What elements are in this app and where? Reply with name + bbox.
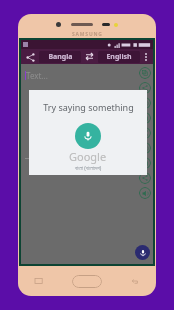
staticText: Bangla: [48, 52, 73, 62]
button[interactable]: Bangla: [39, 51, 81, 63]
button[interactable]: Share: [139, 127, 151, 139]
button[interactable]: Share: [24, 51, 36, 63]
button[interactable]: Copy: [139, 67, 151, 79]
button[interactable]: English: [98, 51, 140, 63]
button[interactable]: Back: [128, 274, 142, 288]
button[interactable]: Share: [139, 172, 151, 184]
button[interactable]: Listening, tap to stop: [75, 123, 101, 149]
staticText: Google: [69, 149, 107, 164]
button[interactable]: Speak: [139, 142, 151, 154]
button[interactable]: Recents: [32, 274, 46, 288]
staticText: বাংলা (বাংলাদেশ): [75, 165, 102, 172]
button[interactable]: Voice input: [135, 245, 150, 260]
button[interactable]: Swap languages: [83, 50, 96, 63]
button[interactable]: Copy: [139, 157, 151, 169]
button[interactable]: More options: [142, 50, 150, 63]
button[interactable]: Speak: [139, 97, 151, 109]
button[interactable]: Share: [139, 82, 151, 94]
staticText: Try saying something: [43, 101, 134, 113]
staticText: Text...: [26, 70, 48, 81]
staticText: SAMSUNG: [72, 31, 103, 38]
staticText: English: [106, 52, 132, 62]
button[interactable]: Copy: [139, 112, 151, 124]
button[interactable]: Home: [72, 275, 102, 288]
button[interactable]: Speak: [139, 187, 151, 199]
